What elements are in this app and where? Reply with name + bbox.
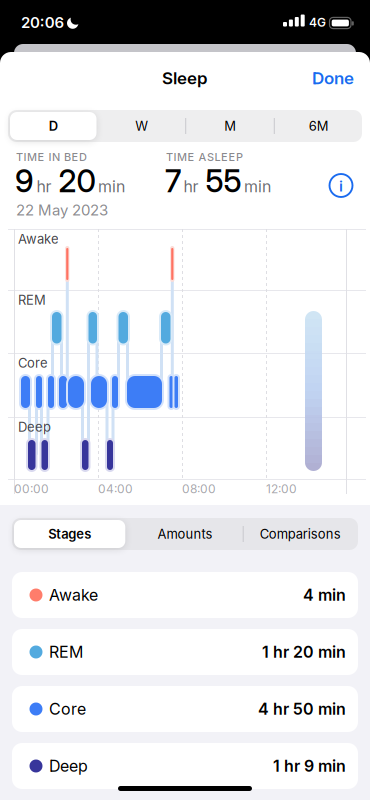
staticText: Awake: [18, 231, 59, 247]
staticText: REM: [49, 643, 83, 661]
staticText: 20: [58, 163, 95, 199]
staticText: min: [98, 177, 125, 196]
staticText: 4 hr 50 min: [258, 700, 346, 718]
button[interactable]: Awake: [12, 572, 358, 618]
staticText: TIME IN BED: [16, 150, 87, 163]
staticText: 1 hr 9 min: [273, 757, 346, 775]
button[interactable]: Done: [294, 63, 354, 93]
button[interactable]: M: [186, 110, 274, 142]
button[interactable]: W: [98, 110, 186, 142]
staticText: Comparisons: [260, 526, 341, 542]
staticText: REM: [18, 292, 46, 308]
button[interactable]: Amounts: [128, 518, 241, 550]
button[interactable]: Stages: [13, 518, 126, 550]
staticText: 55: [205, 163, 241, 199]
button[interactable]: Core: [12, 686, 358, 732]
staticText: min: [244, 177, 271, 196]
staticText: 4G: [309, 15, 326, 30]
staticText: 4 min: [303, 586, 346, 604]
staticText: Deep: [18, 419, 51, 435]
staticText: Awake: [49, 586, 98, 604]
staticText: 04:00: [98, 482, 133, 496]
staticText: hr: [36, 177, 51, 196]
staticText: i: [339, 177, 343, 195]
staticText: 9: [15, 163, 34, 199]
staticText: 6M: [309, 118, 329, 134]
staticText: 22 May 2023: [16, 201, 108, 219]
staticText: W: [135, 118, 148, 134]
staticText: Sleep: [162, 68, 208, 88]
staticText: Stages: [48, 526, 91, 542]
staticText: Core: [18, 355, 48, 371]
staticText: TIME ASLEEP: [166, 150, 243, 163]
staticText: 7: [165, 163, 181, 199]
staticText: 00:00: [14, 482, 49, 496]
staticText: hr: [183, 177, 198, 196]
staticText: D: [49, 118, 58, 134]
button[interactable]: More info: [327, 171, 355, 199]
button[interactable]: REM: [12, 629, 358, 675]
staticText: Core: [49, 700, 86, 718]
button[interactable]: D: [9, 110, 97, 142]
staticText: M: [224, 118, 236, 134]
button[interactable]: Deep: [12, 743, 358, 789]
staticText: Deep: [49, 757, 88, 775]
staticText: Done: [312, 68, 354, 88]
staticText: 1 hr 20 min: [262, 643, 346, 661]
staticText: 20:06: [21, 14, 65, 31]
button[interactable]: Comparisons: [244, 518, 357, 550]
staticText: 08:00: [182, 482, 216, 496]
staticText: Amounts: [157, 526, 212, 542]
button[interactable]: 6M: [275, 110, 363, 142]
staticText: 12:00: [266, 482, 297, 496]
